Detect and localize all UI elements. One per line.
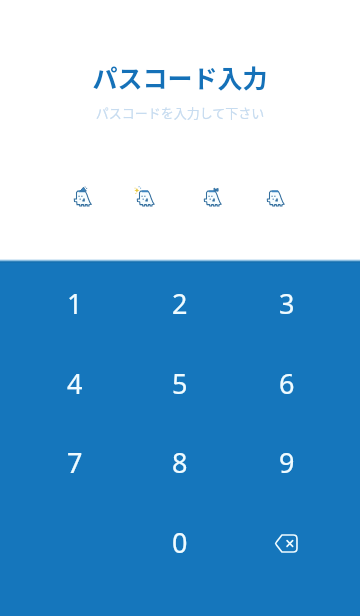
button[interactable]: 0 <box>147 516 213 568</box>
button[interactable]: 9 <box>254 436 320 488</box>
staticText: 7 <box>67 444 83 481</box>
other: Passcode digit 3 <box>199 185 227 213</box>
staticText: 0 <box>172 524 188 561</box>
button[interactable]: 7 <box>42 436 108 488</box>
button[interactable]: 8 <box>147 436 213 488</box>
button[interactable]: 4 <box>42 357 108 409</box>
staticText: 2 <box>172 285 188 322</box>
button[interactable]: 1 <box>42 277 108 329</box>
staticText: 4 <box>67 365 83 402</box>
staticText: パスコードを入力して下さい <box>0 103 360 122</box>
staticText: 5 <box>172 365 188 402</box>
other: Passcode digit 2 <box>132 185 160 213</box>
button[interactable]: Delete <box>254 516 320 568</box>
staticText: 6 <box>279 365 295 402</box>
staticText: 9 <box>279 444 295 481</box>
staticText: パスコード入力 <box>0 59 360 95</box>
other: Passcode digit 1 <box>69 185 97 213</box>
button[interactable]: 6 <box>254 357 320 409</box>
other: Passcode digit 4 <box>262 185 290 213</box>
button[interactable]: 5 <box>147 357 213 409</box>
button[interactable]: 3 <box>254 277 320 329</box>
staticText: 3 <box>279 285 295 322</box>
staticText: 8 <box>172 444 188 481</box>
button[interactable]: 2 <box>147 277 213 329</box>
staticText: 1 <box>67 285 83 322</box>
